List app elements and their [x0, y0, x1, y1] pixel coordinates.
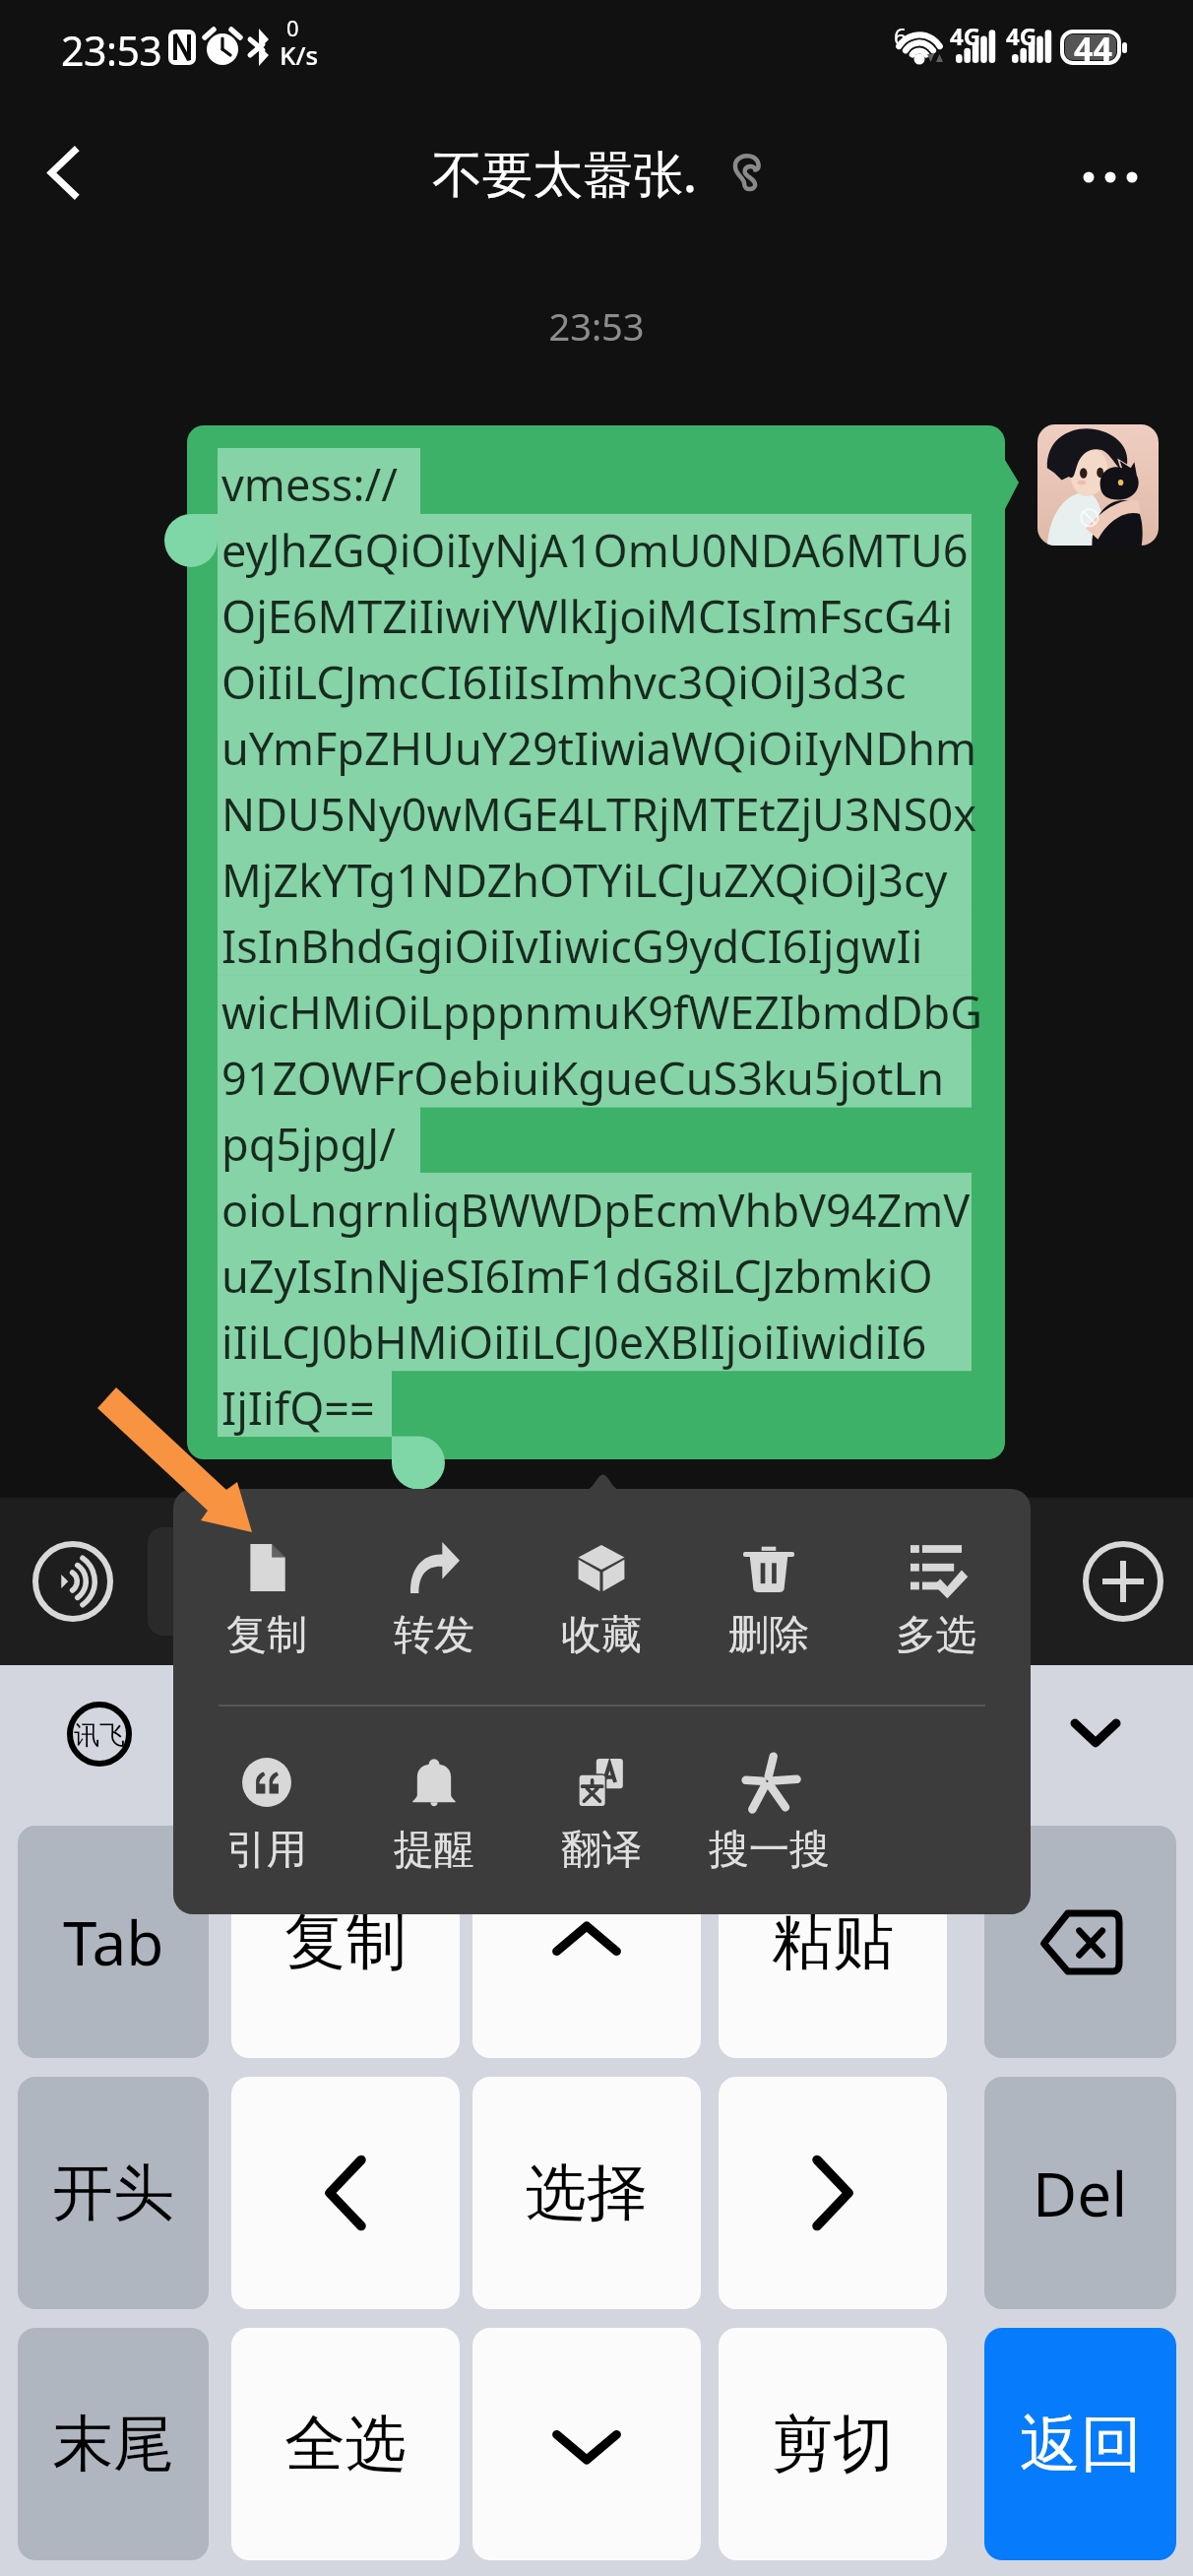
- button[interactable]: 提醒: [355, 1727, 513, 1893]
- button[interactable]: Move cursor down: [472, 2328, 701, 2560]
- button[interactable]: Move cursor up: [472, 1826, 701, 2058]
- button[interactable]: Move cursor right: [719, 2077, 947, 2309]
- staticText: 讯飞: [74, 1719, 125, 1752]
- staticText: 23:53: [61, 23, 162, 78]
- staticText: 删除: [728, 1610, 809, 1661]
- staticText: 搜一搜: [709, 1825, 830, 1876]
- staticText: Del: [1033, 2152, 1128, 2234]
- staticText: K/s: [280, 37, 319, 72]
- staticText: Tab: [63, 1900, 164, 1983]
- button[interactable]: Hide keyboard: [1058, 1695, 1133, 1770]
- staticText: iIiLCJ0bHMiOiIiLCJ0eXBlIjoiIiwidiI6: [221, 1312, 927, 1372]
- button[interactable]: 复制: [231, 1826, 460, 2058]
- staticText: NDU5Ny0wMGE4LTRjMTEtZjU3NS0x: [221, 784, 977, 844]
- staticText: 剪切: [772, 2406, 894, 2482]
- staticText: 4G: [950, 20, 981, 52]
- button[interactable]: 删除: [690, 1513, 848, 1678]
- staticText: 多选: [896, 1610, 976, 1661]
- staticText: IjIifQ==: [221, 1378, 375, 1438]
- staticText: 全选: [284, 2406, 407, 2482]
- staticText: pq5jpgJ/: [221, 1114, 397, 1174]
- button[interactable]: 翻译: [523, 1727, 680, 1893]
- staticText: 选择: [526, 2155, 648, 2231]
- button[interactable]: Tab: [18, 1826, 209, 2058]
- button[interactable]: 复制: [188, 1513, 345, 1678]
- staticText: 44: [1074, 26, 1112, 71]
- staticText: 复制: [226, 1610, 307, 1661]
- staticText: 返回: [1020, 2406, 1142, 2482]
- button[interactable]: 开头: [18, 2077, 209, 2309]
- staticText: 提醒: [394, 1825, 474, 1876]
- button[interactable]: vmess://: [187, 425, 1005, 1459]
- button[interactable]: 收藏: [523, 1513, 680, 1678]
- button[interactable]: 返回: [984, 2328, 1176, 2560]
- button[interactable]: 转发: [355, 1513, 513, 1678]
- staticText: oioLngrnliqBWWDpEcmVhbV94ZmV: [221, 1180, 971, 1240]
- button[interactable]: More functions: [1074, 1532, 1172, 1631]
- staticText: 6: [894, 21, 908, 51]
- button[interactable]: 多选: [857, 1513, 1015, 1678]
- staticText: wicHMiOiLpppnmuK9fWEZIbmdDbG: [221, 982, 983, 1042]
- button[interactable]: Move cursor left: [231, 2077, 460, 2309]
- staticText: uZyIsInNjeSI6ImF1dG8iLCJzbmkiO: [221, 1246, 933, 1306]
- staticText: 转发: [394, 1610, 474, 1661]
- button[interactable]: Avatar: [1037, 424, 1159, 546]
- staticText: OiIiLCJmcCI6IiIsImhvc3QiOiJ3d3c: [221, 652, 907, 712]
- button[interactable]: [148, 1527, 965, 1636]
- button[interactable]: Voice input: [24, 1532, 122, 1631]
- button[interactable]: 引用: [188, 1727, 345, 1893]
- staticText: vmess://: [221, 454, 398, 514]
- staticText: eyJhZGQiOiIyNjA1OmU0NDA6MTU6: [221, 520, 969, 580]
- staticText: 23:53: [0, 300, 1193, 352]
- button[interactable]: More options: [1063, 130, 1158, 225]
- staticText: MjZkYTg1NDZhOTYiLCJuZXQiOiJ3cy: [221, 850, 948, 910]
- staticText: 不要太嚣张.: [432, 138, 697, 207]
- button[interactable]: 剪切: [719, 2328, 947, 2560]
- staticText: uYmFpZHUuY29tIiwiaWQiOiIyNDhm: [221, 718, 977, 778]
- staticText: 引用: [226, 1825, 307, 1876]
- staticText: IsInBhdGgiOiIvIiwicG9ydCI6IjgwIi: [221, 916, 923, 976]
- staticText: 4G: [1006, 20, 1037, 52]
- button[interactable]: 搜一搜: [690, 1727, 848, 1893]
- button[interactable]: Input method settings: [67, 1702, 132, 1767]
- staticText: 翻译: [561, 1825, 642, 1876]
- staticText: 0: [286, 13, 299, 42]
- button[interactable]: 粘贴: [719, 1826, 947, 2058]
- staticText: 粘贴: [772, 1903, 894, 1980]
- staticText: 末尾: [52, 2406, 174, 2482]
- button[interactable]: Back: [16, 125, 110, 220]
- staticText: 91ZOWFrOebiuiKgueCuS3ku5jotLn: [221, 1048, 944, 1108]
- staticText: 收藏: [561, 1610, 642, 1661]
- button[interactable]: 末尾: [18, 2328, 209, 2560]
- staticText: 复制: [284, 1903, 407, 1980]
- button[interactable]: Backspace: [984, 1826, 1176, 2058]
- button[interactable]: Del: [984, 2077, 1176, 2309]
- button[interactable]: 全选: [231, 2328, 460, 2560]
- staticText: 开头: [52, 2155, 174, 2231]
- button[interactable]: 选择: [472, 2077, 701, 2309]
- staticText: OjE6MTZiIiwiYWlkIjoiMCIsImFscG4i: [221, 586, 954, 646]
